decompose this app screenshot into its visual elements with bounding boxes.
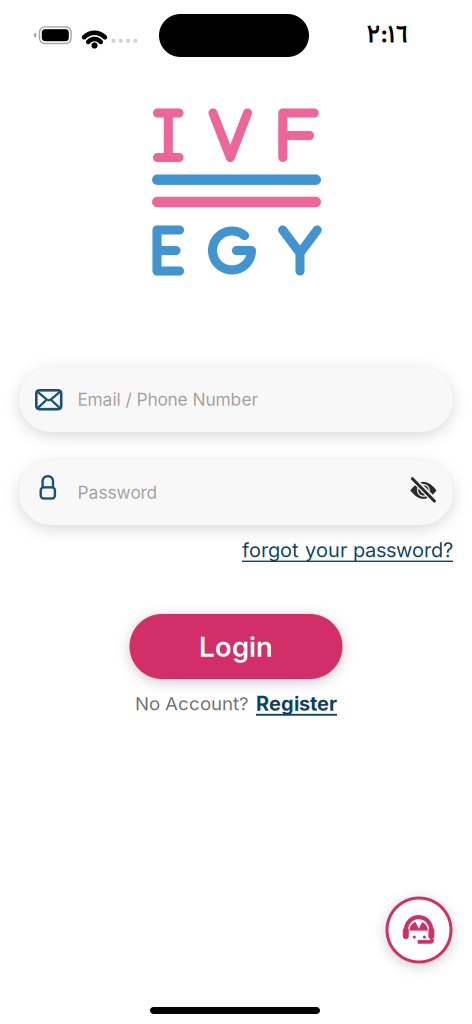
- staticText: No Account?: [135, 692, 249, 715]
- staticText: Register: [256, 691, 337, 716]
- staticText: ٢:١٦: [366, 16, 408, 56]
- button[interactable]: Support: [384, 895, 454, 965]
- button[interactable]: Register: [256, 691, 337, 716]
- staticText: Email / Phone Number: [77, 389, 258, 410]
- button[interactable]: Show password: [401, 468, 445, 512]
- button[interactable]: forgot your password?: [242, 538, 453, 562]
- staticText: forgot your password?: [242, 538, 453, 562]
- staticText: Password: [77, 482, 157, 503]
- staticText: Login: [199, 630, 273, 663]
- button[interactable]: Login: [129, 614, 342, 679]
